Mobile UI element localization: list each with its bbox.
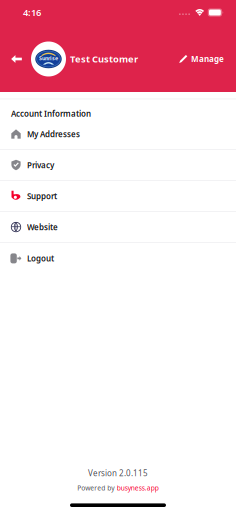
staticText: 4:16	[23, 6, 41, 19]
staticText: Website	[27, 222, 58, 232]
staticText: My Addresses	[27, 129, 80, 139]
staticText: Support	[27, 191, 57, 201]
button[interactable]: Privacy	[0, 150, 236, 181]
button[interactable]: Manage	[177, 46, 226, 72]
button[interactable]: Back	[2, 43, 31, 75]
staticText: Logout	[27, 253, 54, 264]
staticText: busyness.app	[117, 483, 159, 492]
staticText: Version 2.0.115	[88, 468, 148, 478]
staticText: Sunrise	[39, 55, 58, 62]
staticText: Powered by	[77, 483, 114, 492]
staticText: Manage	[191, 54, 224, 64]
button[interactable]: Support	[0, 181, 236, 212]
button[interactable]: Website	[0, 212, 236, 243]
button[interactable]: My Addresses	[0, 119, 236, 150]
button[interactable]: Powered by	[77, 483, 159, 492]
button[interactable]: Logout	[0, 243, 236, 274]
staticText: Account Information	[11, 108, 91, 119]
staticText: Privacy	[27, 160, 54, 170]
staticText: Test Customer	[70, 53, 138, 65]
